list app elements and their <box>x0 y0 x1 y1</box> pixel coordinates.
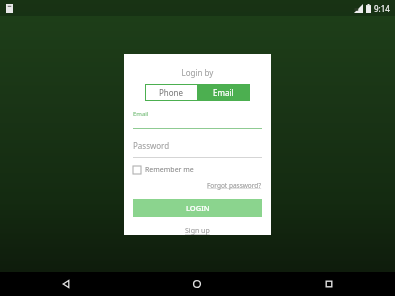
button[interactable]: Sign up <box>185 226 210 235</box>
button[interactable]: Recent apps <box>263 272 395 296</box>
button[interactable]: Phone <box>145 84 197 101</box>
button[interactable]: Email <box>133 110 262 129</box>
staticText: Password <box>133 140 170 151</box>
button[interactable]: Remember me <box>133 165 194 175</box>
staticText: 9:14 <box>374 3 390 14</box>
staticText: Email <box>213 87 234 98</box>
button[interactable]: Back <box>0 272 131 296</box>
staticText: LOGIN <box>186 203 210 213</box>
button[interactable]: Password <box>133 140 262 158</box>
button[interactable]: LOGIN <box>133 199 262 217</box>
staticText: Remember me <box>145 165 194 175</box>
staticText: Phone <box>159 87 184 98</box>
button[interactable]: Home <box>131 272 263 296</box>
staticText: Login by <box>133 67 262 78</box>
button[interactable]: Forgot password? <box>207 181 262 190</box>
staticText: Email <box>133 110 149 118</box>
button[interactable]: Email <box>197 84 250 101</box>
